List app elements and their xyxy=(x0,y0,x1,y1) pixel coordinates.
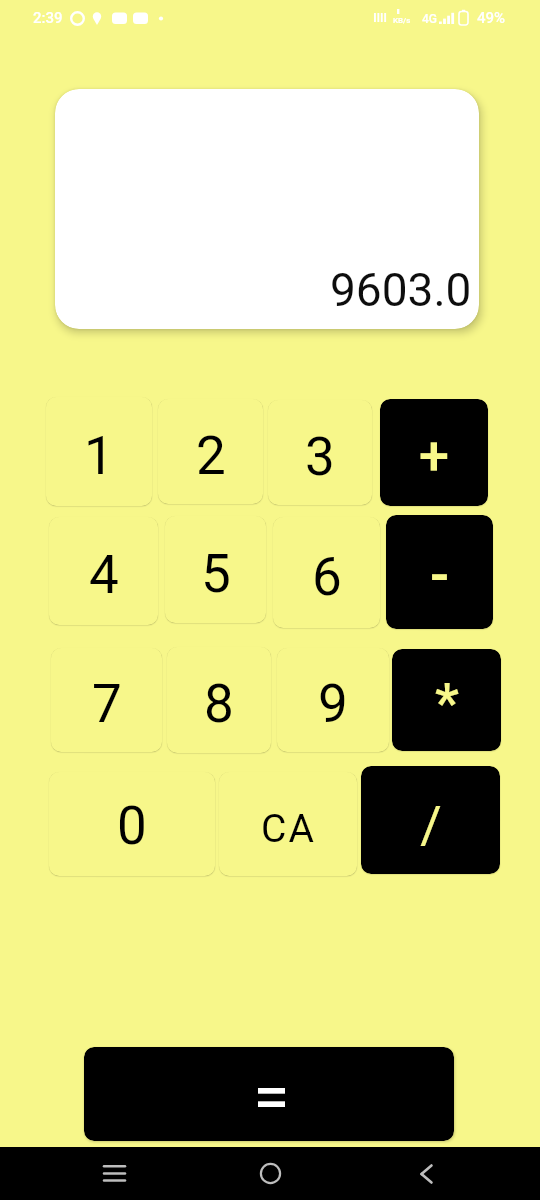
button[interactable]: CA xyxy=(219,772,357,876)
staticText: 4G xyxy=(422,12,437,26)
staticText: 7 xyxy=(92,673,122,735)
button[interactable]: Recent apps xyxy=(74,1147,154,1200)
staticText: 6 xyxy=(312,546,342,608)
button[interactable]: Back xyxy=(386,1147,466,1200)
button[interactable]: Equals xyxy=(84,1047,454,1141)
button[interactable]: 2 xyxy=(158,399,263,504)
staticText: 9603.0 xyxy=(330,263,472,317)
staticText: + xyxy=(419,424,449,487)
staticText: 2:39 xyxy=(33,9,63,27)
button[interactable]: 7 xyxy=(51,648,162,752)
staticText: 5 xyxy=(201,543,231,605)
staticText: 4 xyxy=(89,544,119,606)
button[interactable]: + xyxy=(380,399,488,506)
button[interactable]: 3 xyxy=(268,400,372,505)
button[interactable]: 8 xyxy=(167,647,271,753)
staticText: CA xyxy=(261,806,316,852)
staticText: 8 xyxy=(204,673,234,735)
button[interactable]: 4 xyxy=(49,517,158,625)
staticText: 49% xyxy=(477,9,506,27)
button[interactable]: - xyxy=(386,515,493,629)
staticText: 1 xyxy=(84,425,114,487)
button[interactable]: 0 xyxy=(49,772,215,876)
staticText: 2 xyxy=(196,425,226,487)
staticText: / xyxy=(420,795,442,856)
button[interactable]: 9603.0 xyxy=(55,89,479,329)
staticText: KB/s xyxy=(393,16,411,25)
button[interactable]: 6 xyxy=(273,517,380,628)
button[interactable]: / xyxy=(361,766,500,874)
staticText: * xyxy=(435,672,459,734)
staticText: 3 xyxy=(305,426,335,488)
button[interactable]: 1 xyxy=(46,397,152,506)
button[interactable]: Home xyxy=(230,1147,310,1200)
staticText: - xyxy=(429,543,450,607)
staticText: 0 xyxy=(117,795,147,857)
button[interactable]: 5 xyxy=(165,516,266,623)
staticText: 9 xyxy=(318,673,348,735)
button[interactable]: * xyxy=(392,649,501,751)
button[interactable]: 9 xyxy=(277,648,389,752)
